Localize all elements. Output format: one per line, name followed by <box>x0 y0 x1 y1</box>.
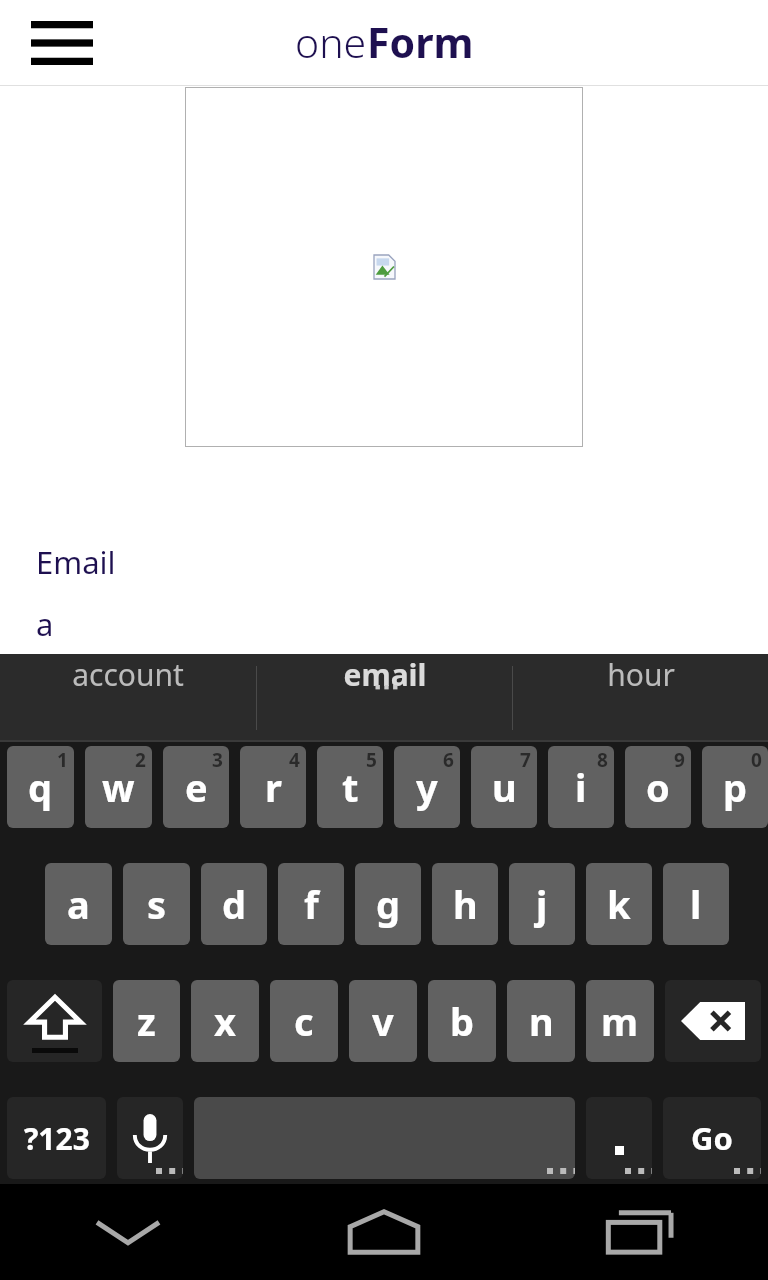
button[interactable]: p <box>702 746 768 828</box>
staticText: hour <box>607 654 675 695</box>
button[interactable]: e <box>163 746 229 828</box>
button[interactable]: i <box>548 746 614 828</box>
staticText: ?123 <box>24 1118 90 1159</box>
staticText: r <box>265 761 282 813</box>
button[interactable]: w <box>85 746 152 828</box>
button[interactable]: x <box>191 980 259 1062</box>
button[interactable]: Shift <box>7 980 102 1062</box>
button[interactable]: Home <box>256 1184 512 1280</box>
button[interactable]: hour <box>513 654 768 695</box>
button[interactable]: Open navigation menu <box>18 10 106 76</box>
staticText: 1 <box>57 747 68 773</box>
button[interactable]: n <box>507 980 575 1062</box>
staticText: 8 <box>597 747 608 773</box>
button[interactable]: Hide keyboard <box>0 1184 256 1280</box>
button[interactable]: t <box>317 746 383 828</box>
button[interactable]: z <box>113 980 180 1062</box>
staticText: x <box>214 995 236 1047</box>
button[interactable]: v <box>349 980 417 1062</box>
button[interactable]: y <box>394 746 460 828</box>
staticText: Email <box>36 541 116 583</box>
staticText: d <box>222 878 247 930</box>
button[interactable]: Recent apps <box>512 1184 768 1280</box>
staticText: o <box>646 761 670 813</box>
button[interactable]: Voice input <box>117 1097 183 1179</box>
staticText: 3 <box>212 747 223 773</box>
staticText: 7 <box>520 747 531 773</box>
staticText: 2 <box>135 747 146 773</box>
staticText: q <box>28 761 53 813</box>
staticText: a <box>67 878 90 930</box>
staticText: 6 <box>443 747 454 773</box>
button[interactable]: a <box>45 863 112 945</box>
button[interactable]: f <box>278 863 344 945</box>
staticText: 5 <box>366 747 377 773</box>
button[interactable] <box>586 1097 652 1179</box>
button[interactable]: u <box>471 746 537 828</box>
staticText: g <box>376 878 401 930</box>
staticText: one <box>295 14 367 70</box>
staticText: s <box>147 878 167 930</box>
staticText: c <box>294 995 314 1047</box>
staticText: w <box>102 761 135 813</box>
button[interactable]: o <box>625 746 691 828</box>
staticText: n <box>529 995 554 1047</box>
staticText: f <box>304 878 319 930</box>
button[interactable]: Space <box>194 1097 575 1179</box>
staticText: z <box>137 995 156 1047</box>
button[interactable]: email <box>257 654 512 695</box>
button[interactable]: j <box>509 863 575 945</box>
staticText: e <box>185 761 208 813</box>
staticText: i <box>575 761 587 813</box>
button[interactable]: g <box>355 863 421 945</box>
button[interactable]: account <box>0 654 256 695</box>
button[interactable]: b <box>428 980 496 1062</box>
staticText: m <box>601 995 639 1047</box>
button[interactable]: q <box>7 746 74 828</box>
button[interactable]: Go <box>663 1097 761 1179</box>
button[interactable]: m <box>586 980 654 1062</box>
staticText: email <box>343 654 427 695</box>
staticText: t <box>342 761 359 813</box>
button[interactable]: c <box>270 980 338 1062</box>
staticText: j <box>536 878 548 930</box>
staticText: k <box>607 878 631 930</box>
staticText: v <box>372 995 394 1047</box>
button[interactable]: k <box>586 863 652 945</box>
button[interactable]: l <box>663 863 729 945</box>
staticText: 0 <box>751 747 762 773</box>
staticText: Form <box>367 14 474 70</box>
staticText: account <box>72 654 184 695</box>
staticText: p <box>723 761 748 813</box>
button[interactable]: Backspace <box>665 980 761 1062</box>
staticText: 9 <box>674 747 685 773</box>
staticText: y <box>416 761 438 813</box>
staticText: Go <box>691 1117 733 1159</box>
staticText: b <box>450 995 475 1047</box>
staticText: a <box>36 603 54 645</box>
button[interactable]: h <box>432 863 498 945</box>
button[interactable]: ?123 <box>7 1097 106 1179</box>
staticText: h <box>453 878 478 930</box>
button[interactable]: d <box>201 863 267 945</box>
button[interactable]: r <box>240 746 306 828</box>
staticText: l <box>690 878 702 930</box>
staticText: 4 <box>289 747 300 773</box>
staticText: u <box>492 761 517 813</box>
button[interactable]: s <box>123 863 190 945</box>
